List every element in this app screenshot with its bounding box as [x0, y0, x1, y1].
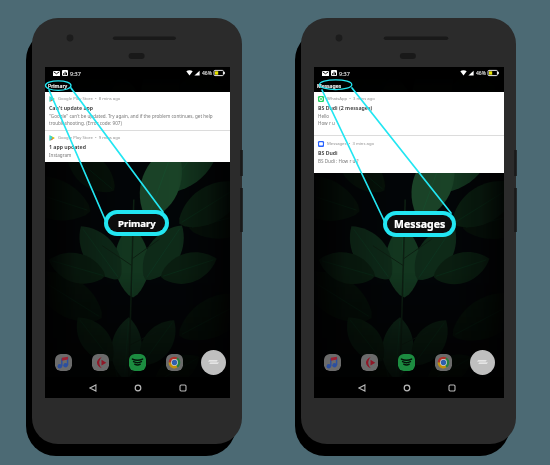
button[interactable]: Chrome [166, 354, 183, 371]
staticText: WhatsApp • 3 mins ago [327, 96, 375, 102]
button[interactable]: Music [55, 354, 72, 371]
button[interactable]: Photos [361, 354, 378, 371]
staticText: Google Play Store • 8 mins ago [58, 96, 121, 102]
button[interactable]: Home [400, 381, 413, 394]
button[interactable]: Messages • 3 mins ago [314, 136, 504, 173]
staticText: 9:37 [339, 70, 350, 77]
staticText: 1 app updated [49, 143, 86, 150]
staticText: troubleshooting. (Error code: 907) [49, 120, 122, 126]
button[interactable]: Spotify [129, 354, 146, 371]
staticText: 9:37 [70, 70, 81, 77]
staticText: Instagram [49, 152, 72, 158]
button[interactable]: Google Play Store • 8 mins ago [45, 92, 230, 130]
staticText: 46% [202, 70, 212, 77]
staticText: Messages • 3 mins ago [327, 141, 375, 147]
staticText: Messages [317, 82, 342, 89]
button[interactable]: Recents [445, 381, 458, 394]
button[interactable]: Home [131, 381, 144, 394]
button[interactable]: Spotify [398, 354, 415, 371]
button[interactable]: Primary [108, 214, 165, 232]
staticText: Google Play Store • 9 mins ago [58, 135, 121, 141]
button[interactable]: Google Play Store • 9 mins ago [45, 131, 230, 162]
button[interactable]: Back [86, 381, 99, 394]
staticText: Messages [394, 217, 446, 231]
button[interactable]: Photos [92, 354, 109, 371]
staticText: BS Dudi (2 messages) [318, 104, 373, 111]
staticText: BS Dudi [318, 149, 338, 156]
staticText: Can't update app [49, 104, 94, 111]
button[interactable]: Chrome [435, 354, 452, 371]
button[interactable]: Recents [176, 381, 189, 394]
staticText: BS Dudi : How r u ? [318, 158, 359, 164]
button[interactable]: Back [355, 381, 368, 394]
staticText: How r u [318, 120, 335, 126]
button[interactable]: All apps [470, 350, 495, 375]
button[interactable]: All apps [201, 350, 226, 375]
button[interactable]: Messages [387, 215, 452, 233]
button[interactable]: WhatsApp • 3 mins ago [314, 92, 504, 135]
button[interactable]: Music [324, 354, 341, 371]
staticText: Hello [318, 113, 330, 119]
staticText: Primary [118, 217, 156, 230]
staticText: Primary [48, 82, 68, 89]
staticText: 46% [476, 70, 486, 77]
staticText: "Google" can't be updated. Try again, an… [49, 113, 213, 119]
